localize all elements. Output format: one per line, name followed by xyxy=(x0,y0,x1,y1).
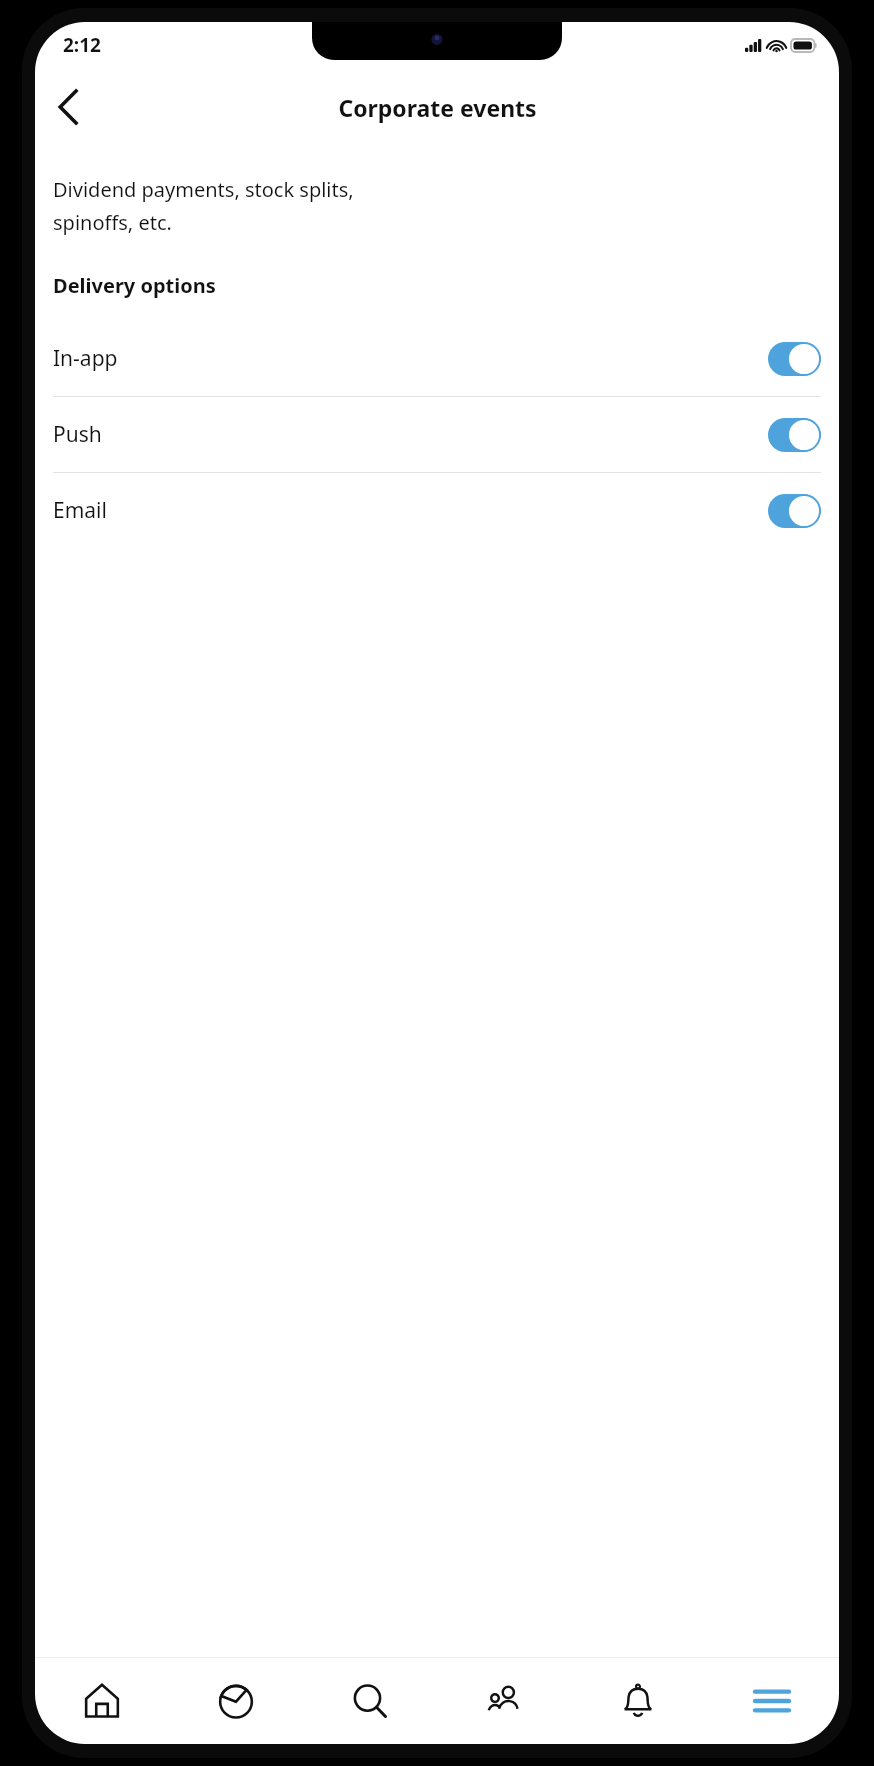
button[interactable]: Menu xyxy=(705,1658,839,1744)
button[interactable]: Contacts xyxy=(437,1658,571,1744)
button[interactable]: Home xyxy=(35,1658,169,1744)
staticText: In-app xyxy=(53,344,768,373)
staticText: Email xyxy=(53,496,768,525)
staticText: 2:12 xyxy=(63,32,101,58)
button[interactable]: Notifications xyxy=(571,1658,705,1744)
button[interactable]: Portfolio xyxy=(169,1658,303,1744)
button[interactable]: Toggle xyxy=(768,418,821,452)
button[interactable]: Toggle xyxy=(768,342,821,376)
staticText: Delivery options xyxy=(53,272,216,299)
button[interactable]: Search xyxy=(303,1658,437,1744)
staticText: Corporate events xyxy=(338,92,537,123)
staticText: Dividend payments, stock splits, spinoff… xyxy=(53,176,354,236)
button[interactable]: In-app xyxy=(35,321,839,396)
staticText: Push xyxy=(53,420,768,449)
button[interactable]: Back xyxy=(43,81,95,133)
button[interactable]: Toggle xyxy=(768,494,821,528)
button[interactable]: Push xyxy=(35,397,839,472)
button[interactable]: Email xyxy=(35,473,839,548)
